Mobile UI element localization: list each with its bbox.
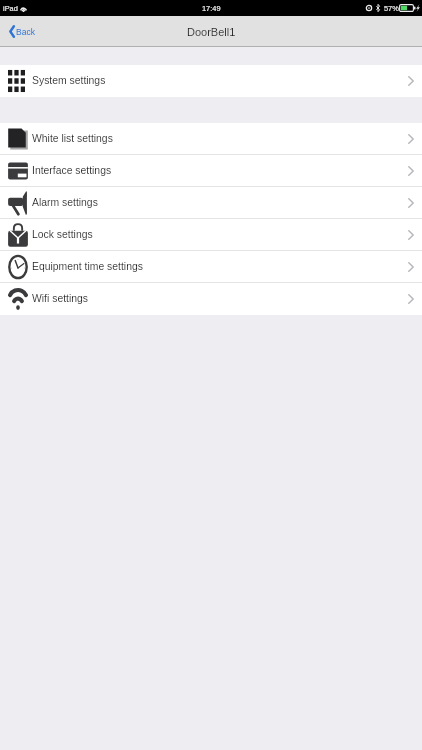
staticText: White list settings: [32, 133, 113, 145]
button[interactable]: Interface settings: [0, 155, 422, 187]
button[interactable]: White list settings: [0, 123, 422, 155]
staticText: Equipment time settings: [32, 261, 143, 273]
staticText: Interface settings: [32, 165, 112, 177]
staticText: System settings: [32, 75, 106, 87]
button[interactable]: Equipment time settings: [0, 251, 422, 283]
button[interactable]: System settings: [0, 65, 422, 97]
staticText: Lock settings: [32, 229, 93, 241]
staticText: 57%: [384, 4, 399, 12]
staticText: Wifi settings: [32, 293, 89, 305]
staticText: DoorBell1: [187, 26, 236, 38]
staticText: Back: [16, 27, 35, 36]
staticText: Alarm settings: [32, 197, 98, 209]
button[interactable]: Alarm settings: [0, 187, 422, 219]
staticText: iPad: [3, 4, 18, 12]
staticText: 17:49: [202, 4, 221, 12]
button[interactable]: Wifi settings: [0, 283, 422, 315]
button[interactable]: Back: [0, 20, 43, 43]
button[interactable]: Lock settings: [0, 219, 422, 251]
